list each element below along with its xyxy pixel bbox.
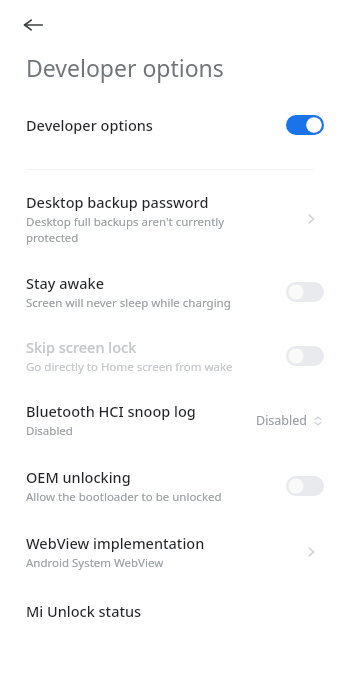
staticText: Skip screen lock — [26, 337, 137, 357]
staticText: WebView implementation — [26, 533, 205, 553]
staticText: Disabled — [26, 423, 73, 439]
button[interactable]: Desktop backup password — [0, 192, 340, 245]
staticText: Disabled — [256, 412, 308, 429]
staticText: Allow the bootloader to be unlocked — [26, 489, 222, 505]
staticText: Stay awake — [26, 273, 104, 293]
button[interactable]: Back — [18, 10, 48, 40]
staticText: Bluetooth HCI snoop log — [26, 401, 196, 421]
button[interactable]: Stay awake — [0, 273, 340, 311]
staticText: Go directly to Home screen from wake — [26, 359, 233, 375]
button[interactable]: Mi Unlock status — [0, 601, 340, 621]
button[interactable]: Developer options — [0, 109, 340, 141]
staticText: Android System WebView — [26, 555, 164, 571]
staticText: Mi Unlock status — [26, 601, 142, 621]
button[interactable]: Open WebView implementation — [298, 539, 324, 565]
staticText: OEM unlocking — [26, 467, 131, 487]
button[interactable]: WebView implementation — [0, 533, 340, 571]
staticText: Developer options — [26, 115, 286, 135]
staticText: Desktop full backups aren't currently pr… — [26, 214, 225, 245]
button[interactable]: Open desktop backup password — [298, 206, 324, 232]
button[interactable]: OEM unlocking — [0, 467, 340, 505]
button[interactable]: Skip screen lock — [0, 337, 340, 375]
button[interactable]: Bluetooth HCI snoop log — [0, 401, 340, 439]
staticText: Developer options — [26, 52, 224, 83]
staticText: Screen will never sleep while charging — [26, 295, 231, 311]
button[interactable]: Disabled — [256, 412, 324, 429]
staticText: Desktop backup password — [26, 192, 209, 212]
